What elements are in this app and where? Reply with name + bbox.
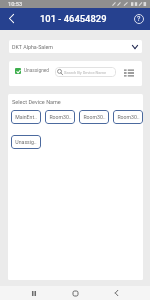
button[interactable]: Search By Device Name bbox=[55, 67, 116, 77]
button[interactable]: Recent apps bbox=[27, 286, 41, 300]
staticText: MainEnt.. bbox=[15, 114, 37, 120]
button[interactable]: MainEnt.. bbox=[11, 110, 41, 124]
staticText: Select Device Name bbox=[12, 99, 61, 105]
button[interactable]: DKT Alpha-Salem bbox=[9, 40, 142, 53]
button[interactable]: Help bbox=[130, 10, 148, 28]
button[interactable]: Back bbox=[109, 286, 123, 300]
button[interactable]: Unassig.. bbox=[11, 135, 41, 149]
button[interactable]: Unassigned bbox=[15, 68, 50, 74]
button[interactable]: Room30.. bbox=[113, 110, 143, 124]
staticText: Unassig.. bbox=[15, 139, 37, 145]
staticText: Room30.. bbox=[49, 114, 72, 120]
staticText: Room30.. bbox=[83, 114, 106, 120]
button[interactable]: Room30.. bbox=[79, 110, 109, 124]
staticText: DKT Alpha-Salem bbox=[12, 44, 53, 50]
staticText: ? bbox=[137, 15, 141, 23]
staticText: 101 - 46454829 bbox=[40, 13, 107, 24]
button[interactable]: Back bbox=[3, 10, 20, 27]
button[interactable]: List view options bbox=[119, 63, 138, 82]
staticText: Search By Device Name bbox=[64, 70, 107, 75]
staticText: Unassigned bbox=[24, 68, 50, 74]
staticText: 10:53 bbox=[8, 1, 23, 8]
staticText: Room30.. bbox=[117, 114, 140, 120]
button[interactable]: Room30.. bbox=[45, 110, 75, 124]
button[interactable]: Home bbox=[68, 286, 82, 300]
